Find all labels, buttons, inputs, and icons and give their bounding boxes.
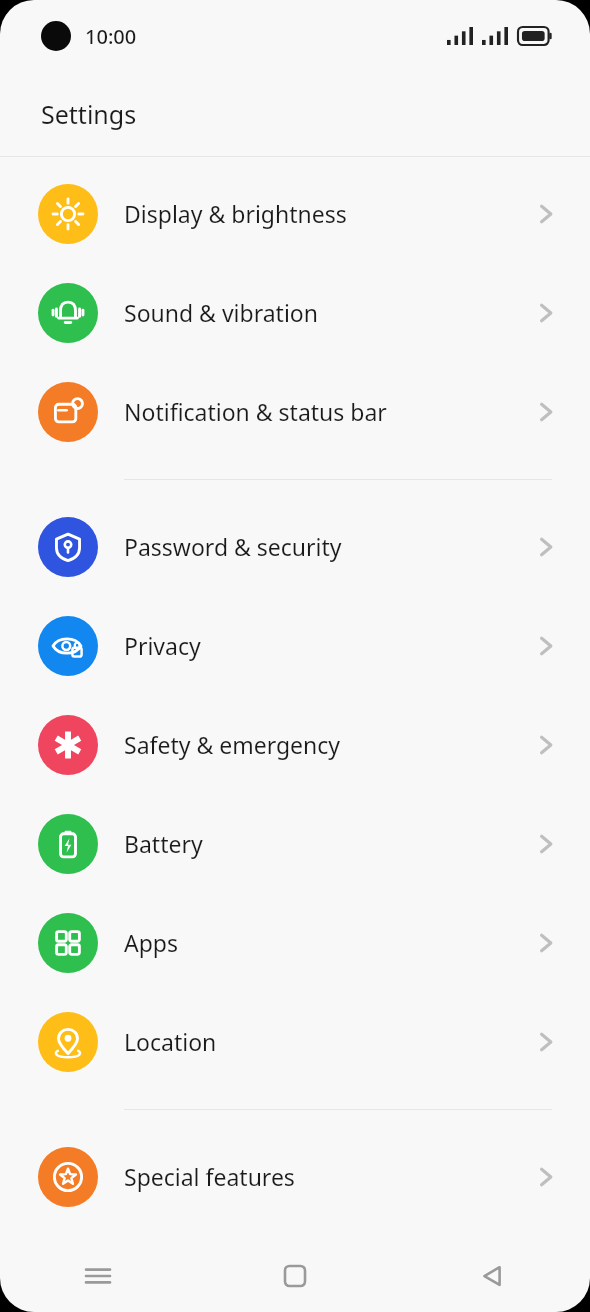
staticText: Settings <box>41 97 137 131</box>
staticText: Location <box>124 1026 535 1057</box>
button[interactable]: Apps <box>0 893 590 992</box>
button[interactable]: Location <box>0 992 590 1091</box>
staticText: Battery <box>124 828 535 859</box>
staticText: Safety & emergency <box>124 729 535 760</box>
staticText: Password & security <box>124 531 535 562</box>
button[interactable]: Battery <box>0 794 590 893</box>
staticText: Display & brightness <box>124 198 535 229</box>
staticText: Notification & status bar <box>124 396 535 427</box>
staticText: Sound & vibration <box>124 297 535 328</box>
button[interactable]: Special features <box>0 1127 590 1226</box>
button[interactable]: Back <box>393 1240 590 1312</box>
button[interactable]: Sound & vibration <box>0 263 590 362</box>
staticText: Special features <box>124 1161 535 1192</box>
button[interactable]: Safety & emergency <box>0 695 590 794</box>
button[interactable]: Home <box>196 1240 393 1312</box>
button[interactable]: Privacy <box>0 596 590 695</box>
staticText: Privacy <box>124 630 535 661</box>
staticText: Apps <box>124 927 535 958</box>
button[interactable]: Recent apps <box>0 1240 196 1312</box>
button[interactable]: Display & brightness <box>0 164 590 263</box>
staticText: 10:00 <box>85 23 137 50</box>
button[interactable]: Password & security <box>0 497 590 596</box>
button[interactable]: Notification & status bar <box>0 362 590 461</box>
